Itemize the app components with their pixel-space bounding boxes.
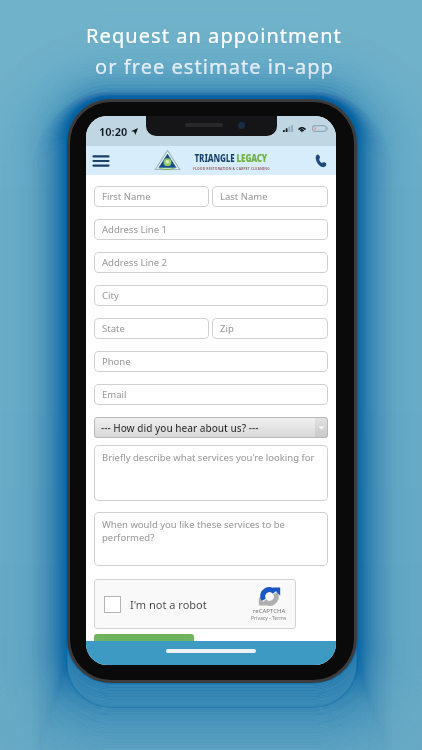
button[interactable]: City — [94, 285, 328, 306]
staticText: Briefly describe what services you're lo… — [102, 451, 315, 464]
button[interactable]: Last Name — [212, 186, 328, 207]
staticText: I'm not a robot — [130, 597, 207, 612]
button[interactable]: Email — [94, 384, 328, 405]
staticText: When would you like these services to be… — [102, 518, 285, 544]
staticText: TRIANGLE — [194, 150, 235, 165]
staticText: Email — [102, 388, 127, 401]
button[interactable]: --- How did you hear about us? --- — [94, 417, 328, 438]
button[interactable]: When would you like these services to be… — [94, 512, 328, 566]
button[interactable]: Address Line 2 — [94, 252, 328, 273]
button[interactable]: First Name — [94, 186, 209, 207]
button[interactable]: Briefly describe what services you're lo… — [94, 445, 328, 501]
button[interactable] — [94, 634, 194, 641]
button[interactable]: I'm not a robot — [94, 579, 296, 629]
staticText: or free estimate in-app — [95, 53, 334, 80]
button[interactable]: Menu — [90, 150, 112, 172]
staticText: State — [102, 322, 125, 335]
staticText: Phone — [102, 355, 131, 368]
button[interactable]: Phone — [94, 351, 328, 372]
staticText: reCAPTCHA — [253, 607, 286, 615]
button[interactable]: Call — [313, 153, 329, 169]
staticText: FLOOD RESTORATION & CARPET CLEANING — [193, 166, 270, 171]
staticText: Request an appointment — [86, 22, 342, 49]
staticText: Last Name — [220, 190, 268, 203]
button[interactable]: Address Line 1 — [94, 219, 328, 240]
staticText: Address Line 2 — [102, 256, 167, 269]
staticText: City — [102, 289, 119, 302]
staticText: First Name — [102, 190, 151, 203]
staticText: Zip — [220, 322, 234, 335]
staticText: --- How did you hear about us? --- — [101, 421, 259, 435]
staticText: Privacy - Terms — [251, 615, 287, 622]
button[interactable]: State — [94, 318, 209, 339]
staticText: Address Line 1 — [102, 223, 167, 236]
button[interactable]: Zip — [212, 318, 328, 339]
staticText: 10:20 — [99, 124, 128, 139]
staticText: LEGACY — [235, 150, 267, 165]
